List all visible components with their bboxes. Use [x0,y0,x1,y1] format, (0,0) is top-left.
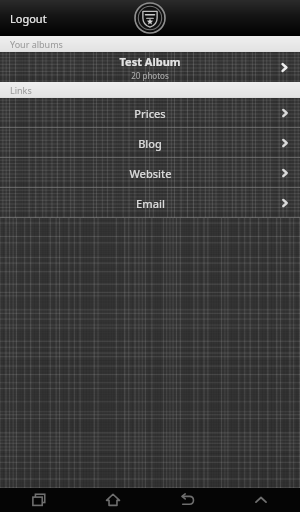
button[interactable]: Back [152,488,222,512]
other: App logo [134,2,166,34]
button[interactable]: Website [0,158,300,188]
staticText: Email [136,196,165,211]
staticText: Blog [138,136,162,151]
button[interactable]: Home [78,488,148,512]
staticText: Website [129,166,172,181]
button[interactable]: Test Album [0,52,300,82]
staticText: Links [10,84,32,96]
staticText: Test Album [119,54,181,69]
staticText: Your albums [10,38,63,50]
staticText: Prices [134,106,166,121]
button[interactable]: Blog [0,128,300,158]
button[interactable]: Recent apps [4,488,74,512]
button[interactable]: Expand [226,488,296,512]
button[interactable]: Email [0,188,300,218]
button[interactable]: Logout [0,0,57,36]
staticText: 20 photos [131,70,169,81]
button[interactable]: Prices [0,98,300,128]
staticText: Logout [10,11,47,26]
